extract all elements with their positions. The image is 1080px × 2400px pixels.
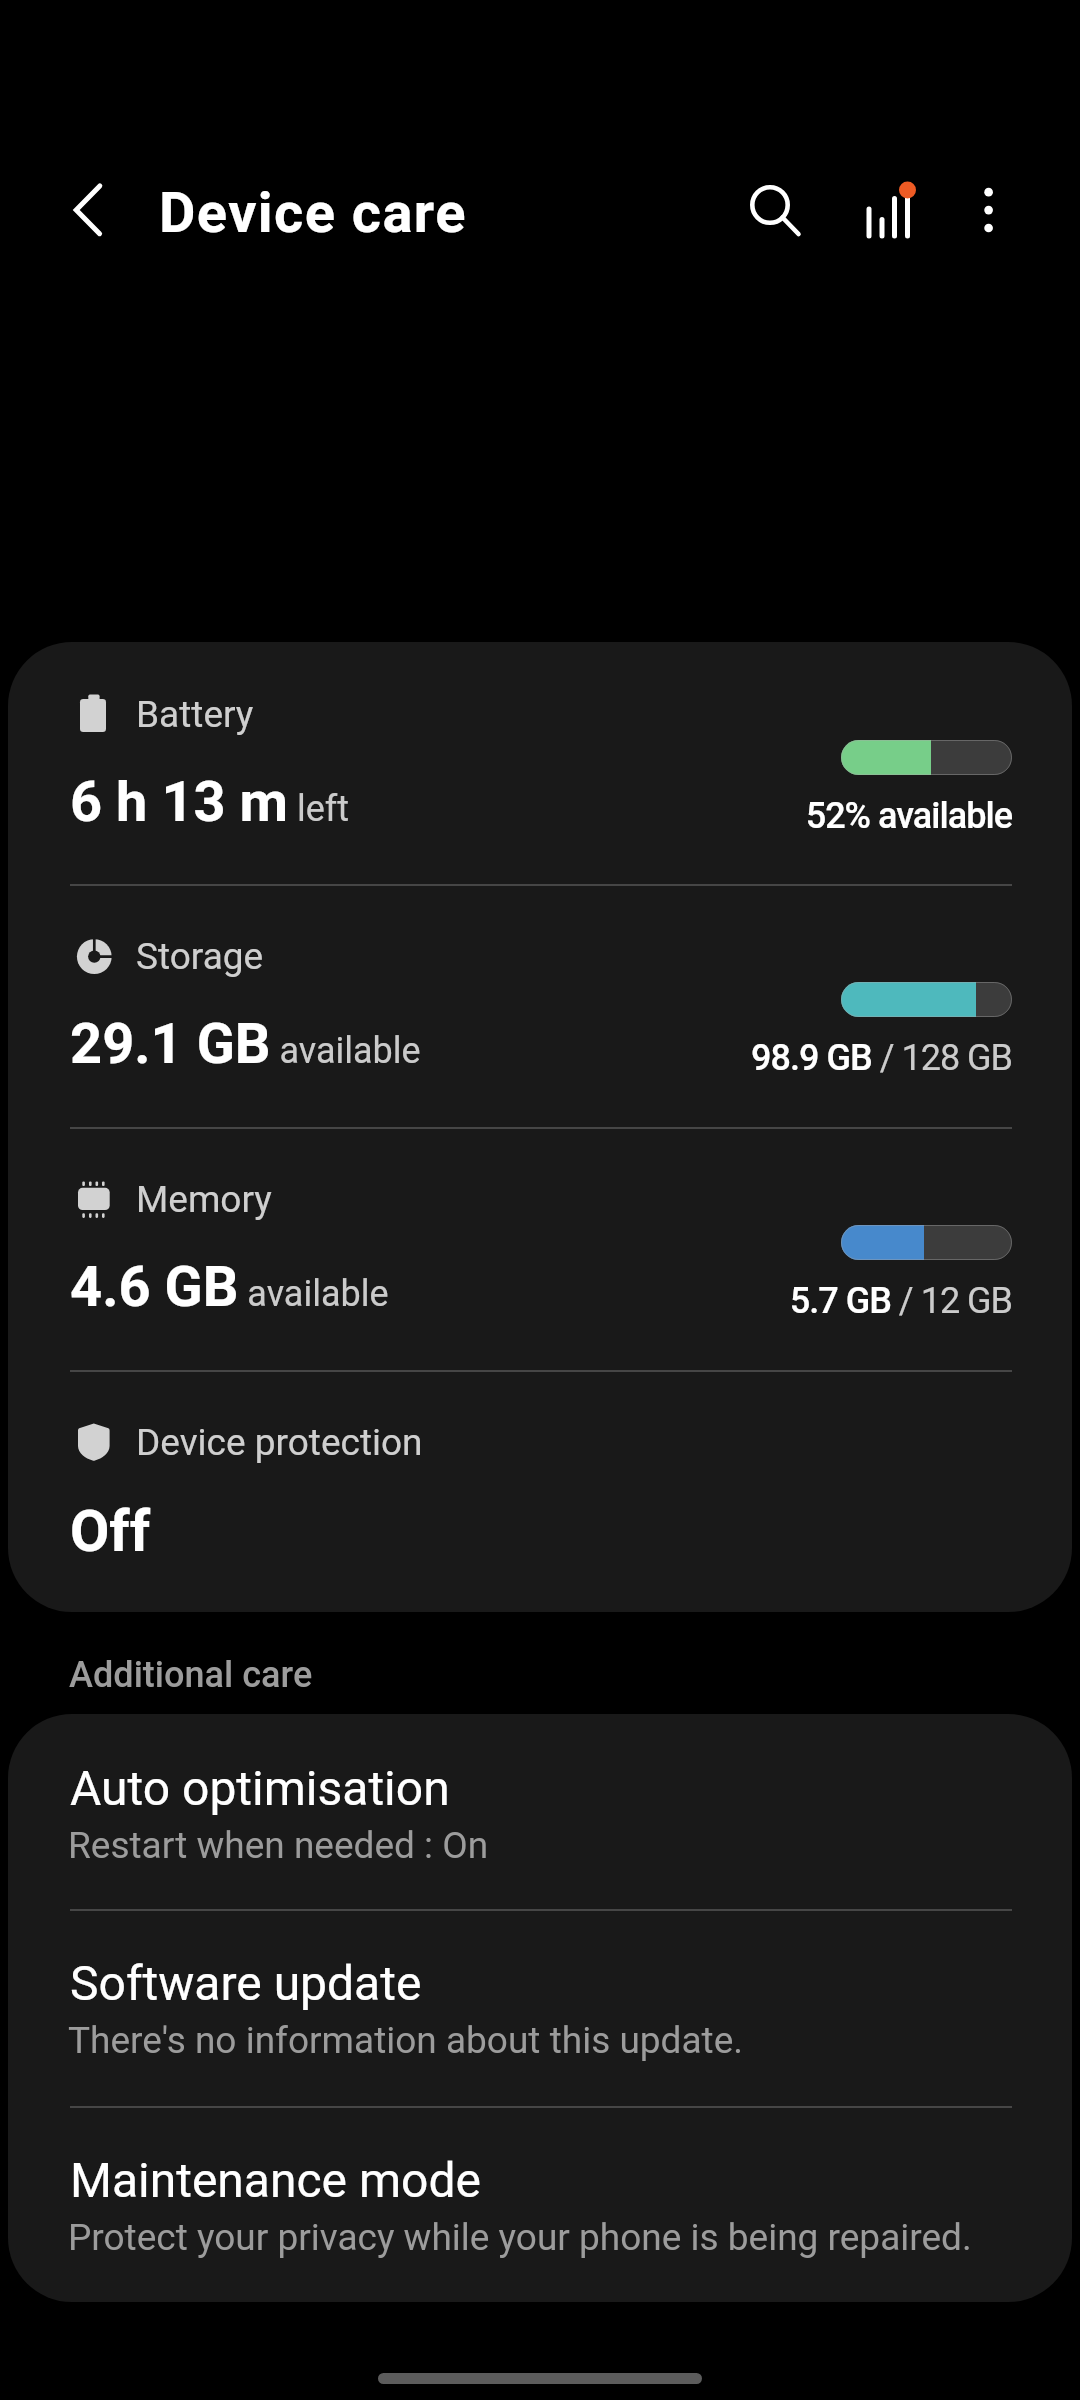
button[interactable]: Battery <box>8 642 1072 884</box>
button[interactable]: Software update <box>8 1909 1072 2105</box>
button[interactable]: Search <box>722 157 818 253</box>
staticText: Maintenance mode <box>70 2152 481 2208</box>
staticText: Protect your privacy while your phone is… <box>68 2216 972 2259</box>
button[interactable]: Navigate up <box>40 162 136 258</box>
button[interactable]: Memory <box>8 1127 1072 1369</box>
staticText: Restart when needed : On <box>68 1824 489 1867</box>
staticText: 29.1 GB available <box>70 1011 421 1077</box>
staticText: 5.7 GB / 12 GB <box>789 1280 1012 1322</box>
button[interactable]: Auto optimisation <box>8 1714 1072 1910</box>
staticText: Memory <box>136 1178 272 1221</box>
staticText: There's no information about this update… <box>68 2019 744 2062</box>
staticText: Storage <box>136 935 264 978</box>
button[interactable]: Device protection <box>8 1370 1072 1612</box>
button[interactable]: Storage <box>8 884 1072 1126</box>
staticText: 52% available <box>805 795 1012 837</box>
button[interactable]: Maintenance mode <box>8 2106 1072 2302</box>
button[interactable]: Usage statistics <box>859 158 955 254</box>
staticText: Auto optimisation <box>70 1760 450 1816</box>
staticText: 4.6 GB available <box>70 1254 389 1320</box>
button[interactable]: More options <box>941 162 1037 258</box>
staticText: Battery <box>136 693 254 736</box>
staticText: Device care <box>159 180 467 246</box>
staticText: Additional care <box>69 1654 313 1696</box>
staticText: Device protection <box>136 1421 423 1464</box>
staticText: 6 h 13 m left <box>70 769 350 835</box>
staticText: 98.9 GB / 128 GB <box>751 1037 1012 1079</box>
staticText: Software update <box>70 1955 422 2011</box>
staticText: Off <box>70 1498 151 1565</box>
